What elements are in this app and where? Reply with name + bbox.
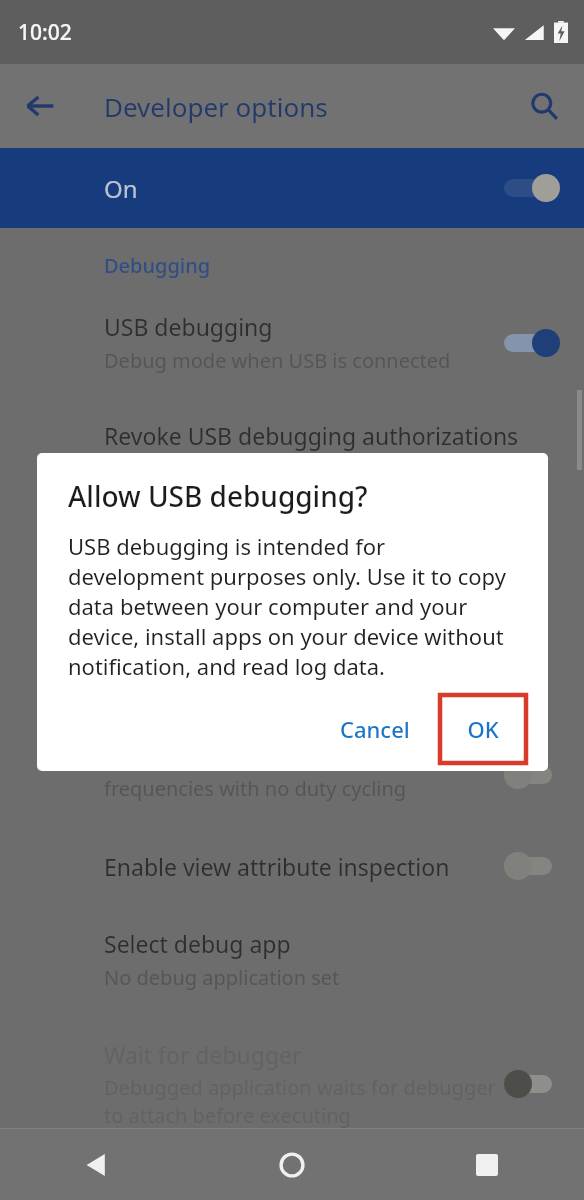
button[interactable]: On — [0, 148, 584, 228]
staticText: USB debugging — [104, 311, 273, 342]
button[interactable]: Search — [516, 78, 572, 134]
staticText: Select debug app — [104, 928, 291, 959]
button[interactable]: Home — [194, 1129, 389, 1200]
staticText: Debugged application waits for debugger … — [104, 1074, 496, 1129]
button[interactable]: Enable view attribute inspection — [0, 850, 584, 882]
button[interactable]: Cancel — [322, 700, 428, 758]
button[interactable]: Track all GNSS constellations and freque… — [0, 747, 584, 802]
staticText: Debug mode when USB is connected — [104, 347, 451, 374]
button[interactable]: OK — [440, 695, 526, 763]
staticText: Allow USB debugging? — [68, 477, 368, 515]
staticText: Wait for debugger — [104, 1039, 302, 1070]
button[interactable]: Back — [0, 1129, 194, 1200]
staticText: Track all GNSS constellations and freque… — [104, 747, 504, 802]
button[interactable]: Wait for debugger — [0, 1039, 584, 1129]
button[interactable]: Back — [12, 78, 68, 134]
button[interactable]: Recent apps — [389, 1129, 584, 1200]
staticText: On — [104, 172, 504, 205]
staticText: Cancel — [340, 714, 410, 744]
staticText: Enable view attribute inspection — [104, 851, 504, 882]
button[interactable]: Select debug app — [0, 928, 584, 991]
button[interactable]: Revoke USB debugging authorizations — [0, 420, 584, 451]
staticText: Debugging — [104, 252, 211, 279]
button[interactable]: USB debugging — [0, 311, 584, 374]
staticText: 10:02 — [18, 18, 72, 47]
staticText: Developer options — [104, 89, 328, 124]
staticText: USB debugging is intended for developmen… — [68, 531, 506, 681]
staticText: No debug application set — [104, 964, 340, 991]
staticText: OK — [467, 714, 499, 744]
